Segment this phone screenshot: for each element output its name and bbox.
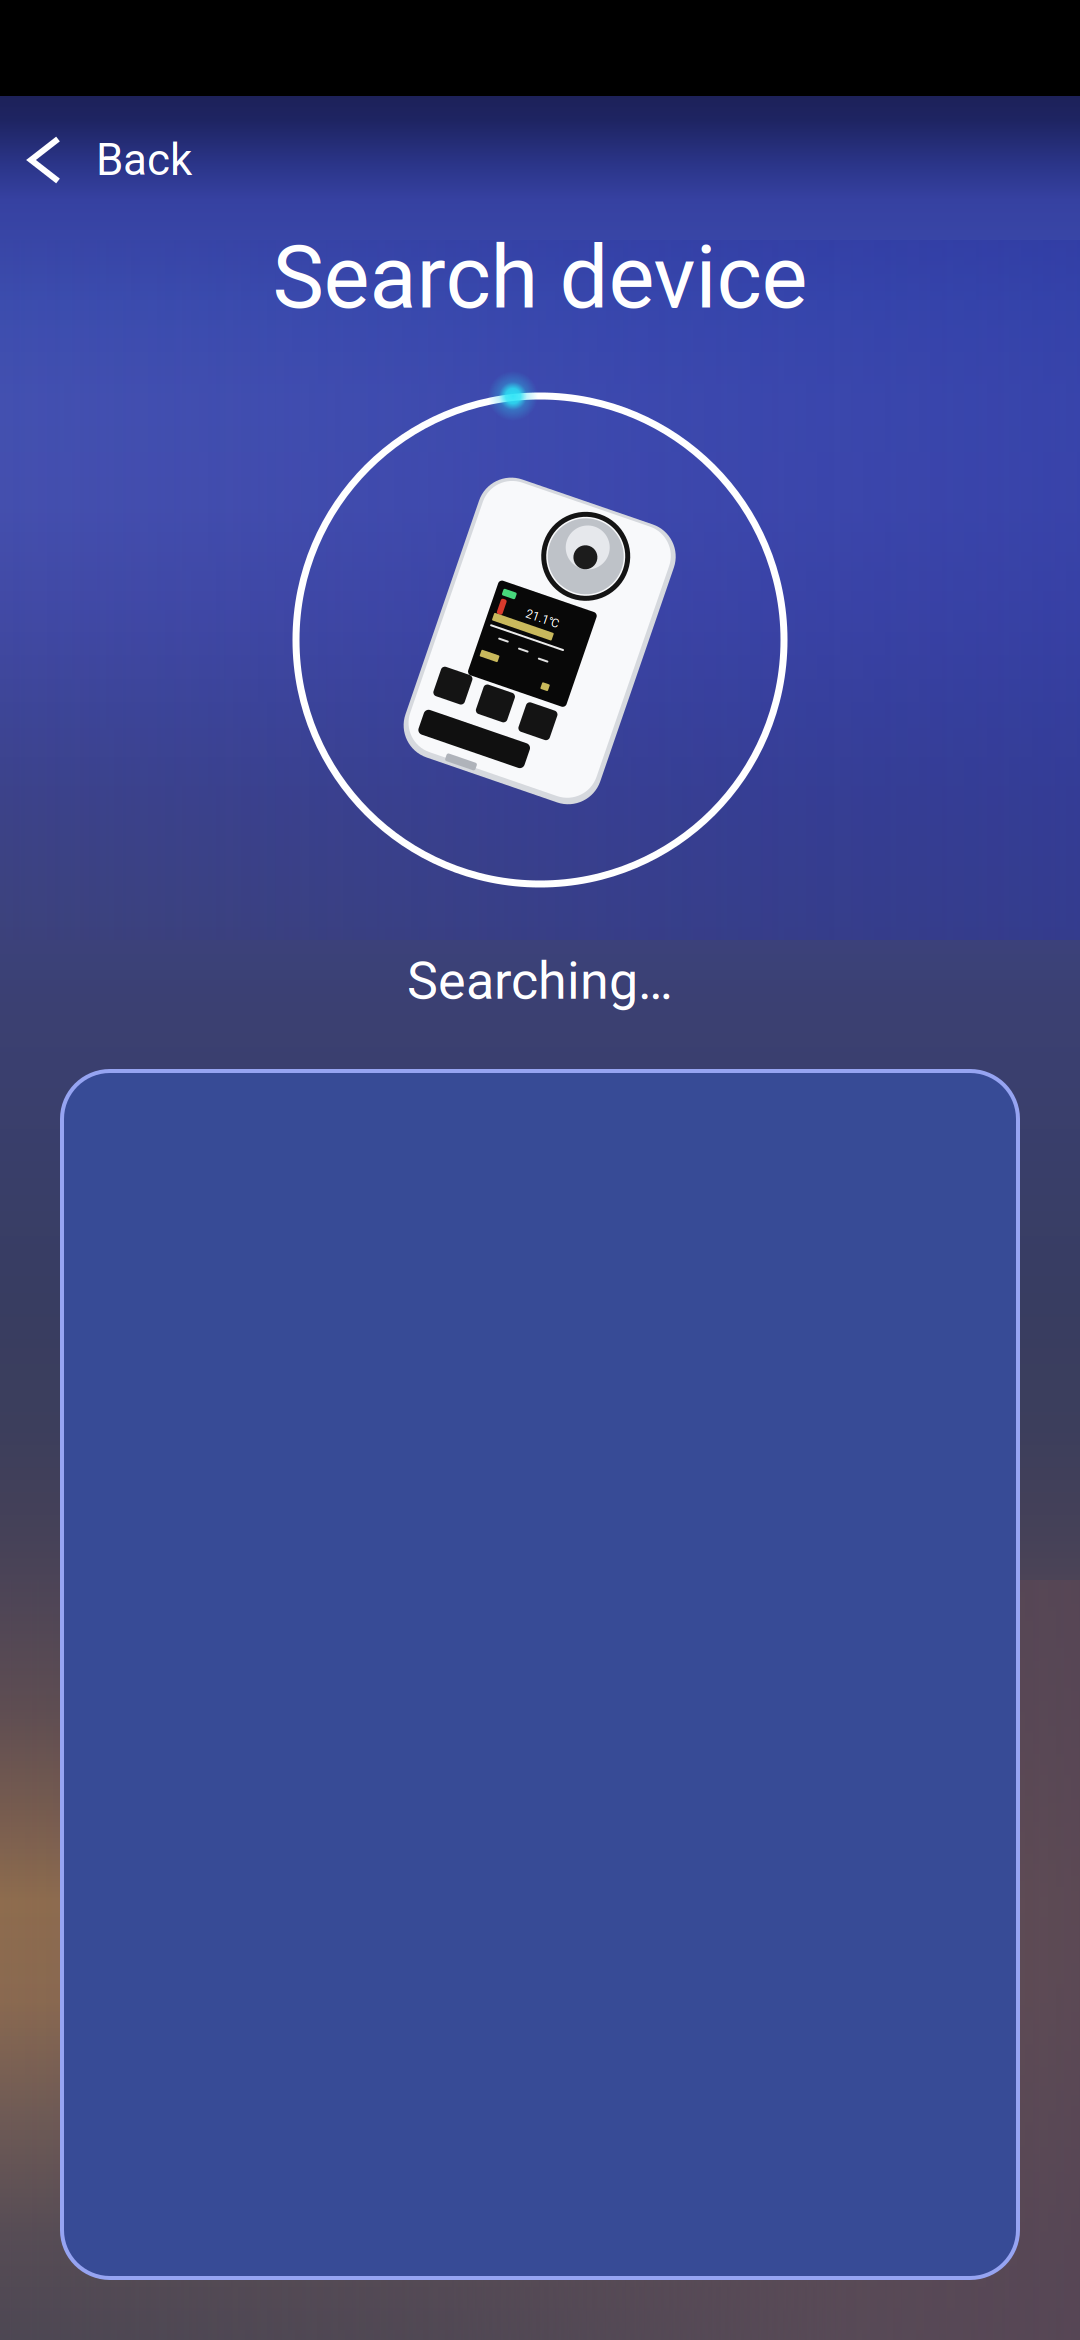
staticText: Back — [96, 134, 192, 186]
button[interactable]: Back — [0, 100, 288, 220]
staticText: Searching… — [407, 950, 673, 1011]
staticText: Search device — [272, 227, 807, 329]
staticText: 21.1℃ — [518, 612, 553, 626]
